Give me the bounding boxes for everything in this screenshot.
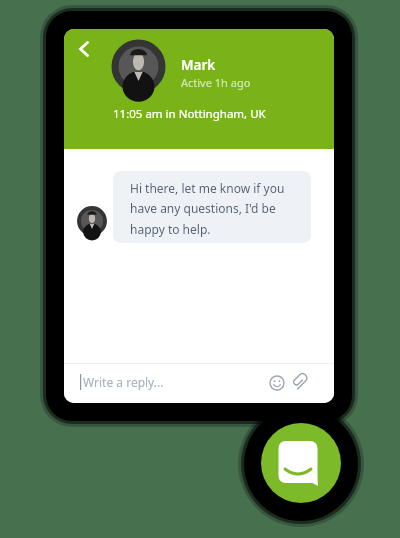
staticText: Mark	[181, 56, 216, 74]
staticText: Hi there, let me know if you have any qu…	[130, 180, 285, 238]
button[interactable]	[261, 423, 341, 503]
button[interactable]: Write a reply...	[64, 363, 334, 403]
staticText: 11:05 am in Nottingham, UK	[113, 106, 266, 122]
button[interactable]	[74, 39, 94, 59]
staticText: Write a reply...	[83, 374, 164, 390]
staticText: Active 1h ago	[181, 75, 251, 90]
